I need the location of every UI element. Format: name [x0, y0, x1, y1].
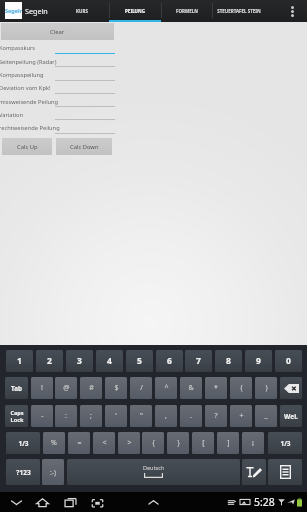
button[interactable]: 9	[245, 350, 272, 372]
staticText: +	[239, 411, 244, 421]
button[interactable]: }	[167, 432, 189, 454]
button[interactable]: 1/3	[6, 432, 40, 454]
staticText: }	[177, 438, 180, 448]
button[interactable]: %	[43, 432, 65, 454]
button[interactable]: Input method	[268, 459, 302, 485]
staticText: :-)	[50, 468, 56, 477]
button[interactable]: Clear	[1, 23, 114, 40]
button[interactable]: (	[230, 377, 252, 399]
button[interactable]: &	[180, 377, 202, 399]
button[interactable]: ?123	[6, 459, 40, 485]
button[interactable]: 1	[6, 350, 33, 372]
button[interactable]: PEILUNG	[109, 0, 161, 22]
button[interactable]: ?	[205, 405, 227, 427]
staticText: ?123	[16, 468, 31, 477]
button[interactable]: Screenshot	[87, 492, 107, 512]
button[interactable]: "	[130, 405, 152, 427]
button[interactable]: >	[118, 432, 140, 454]
button[interactable]: Home	[32, 492, 52, 512]
staticText: Clear	[50, 28, 65, 36]
button[interactable]: Calc Down	[56, 138, 112, 155]
button[interactable]: 7	[185, 350, 212, 372]
staticText: -	[41, 411, 44, 421]
staticText: 2	[47, 355, 52, 367]
staticText: 5:28	[254, 495, 275, 509]
staticText: Segeln	[5, 7, 22, 14]
button[interactable]: !	[31, 377, 53, 399]
button[interactable]: 8	[215, 350, 242, 372]
button[interactable]: 1/3	[268, 432, 302, 454]
staticText: ?	[214, 411, 218, 421]
button[interactable]: .	[180, 405, 202, 427]
staticText: >	[127, 438, 132, 448]
button[interactable]: _	[255, 405, 277, 427]
button[interactable]: <	[93, 432, 115, 454]
button[interactable]: KURS	[55, 0, 109, 22]
button[interactable]: /	[130, 377, 152, 399]
staticText: Seitenpeilung (Radar)	[0, 58, 57, 66]
button[interactable]: Tab	[5, 377, 28, 399]
button[interactable]: Calc Up	[2, 138, 52, 155]
button[interactable]: Backspace	[280, 377, 302, 399]
staticText: KURS	[76, 8, 88, 14]
staticText: Tab	[11, 384, 22, 393]
button[interactable]: Handwriting	[242, 459, 266, 485]
staticText: Kompasspeilung	[0, 71, 44, 79]
staticText: 1	[17, 355, 22, 367]
button[interactable]: #	[80, 377, 102, 399]
staticText: ^	[164, 383, 169, 393]
staticText: Segeln	[25, 6, 48, 16]
staticText: .	[190, 411, 192, 421]
staticText: 1/3	[18, 439, 29, 448]
staticText: [	[202, 438, 205, 448]
staticText: ;	[90, 411, 92, 421]
button[interactable]: -	[31, 405, 53, 427]
button[interactable]: @	[55, 377, 77, 399]
staticText: 5	[137, 355, 142, 367]
staticText: <	[102, 438, 107, 448]
button[interactable]: :	[55, 405, 77, 427]
staticText: 8	[226, 355, 231, 367]
button[interactable]: [	[192, 432, 214, 454]
staticText: PEILUNG	[125, 8, 145, 14]
staticText: Wei.	[284, 412, 298, 421]
button[interactable]: More options	[285, 0, 299, 22]
button[interactable]: 0	[275, 350, 302, 372]
button[interactable]: =	[68, 432, 90, 454]
button[interactable]: ^	[155, 377, 177, 399]
button[interactable]: ;	[80, 405, 102, 427]
button[interactable]: Hide keyboard	[143, 492, 163, 512]
staticText: *	[214, 383, 218, 393]
button[interactable]: App icon	[5, 2, 22, 19]
staticText: '	[115, 411, 117, 421]
button[interactable]: {	[142, 432, 164, 454]
button[interactable]: 4	[96, 350, 123, 372]
button[interactable]: ,	[155, 405, 177, 427]
button[interactable]: Recent apps	[60, 492, 80, 512]
staticText: Variation	[0, 111, 23, 119]
staticText: ¡	[252, 438, 254, 448]
button[interactable]: '	[105, 405, 127, 427]
button[interactable]: :-)	[42, 459, 64, 485]
button[interactable]: $	[105, 377, 127, 399]
button[interactable]: Caps Lock	[5, 405, 28, 427]
button[interactable]: Back	[6, 492, 26, 512]
staticText: Calc Up	[17, 143, 38, 151]
button[interactable]: ]	[217, 432, 239, 454]
staticText: missweisende Peilung	[0, 98, 59, 106]
staticText: %	[51, 438, 57, 448]
button[interactable]: Wei.	[280, 405, 302, 427]
staticText: &	[188, 383, 194, 393]
button[interactable]: 2	[36, 350, 63, 372]
button[interactable]: ¡	[242, 432, 264, 454]
button[interactable]: 5	[126, 350, 153, 372]
button[interactable]: 6	[156, 350, 183, 372]
button[interactable]: 3	[66, 350, 93, 372]
staticText: 9	[256, 355, 261, 367]
button[interactable]: +	[230, 405, 252, 427]
button[interactable]: STEUERTAFEL STEIN	[212, 0, 266, 22]
button[interactable]: *	[205, 377, 227, 399]
button[interactable]: )	[255, 377, 277, 399]
button[interactable]: FORMELN	[161, 0, 213, 22]
button[interactable]: Space	[67, 459, 240, 485]
